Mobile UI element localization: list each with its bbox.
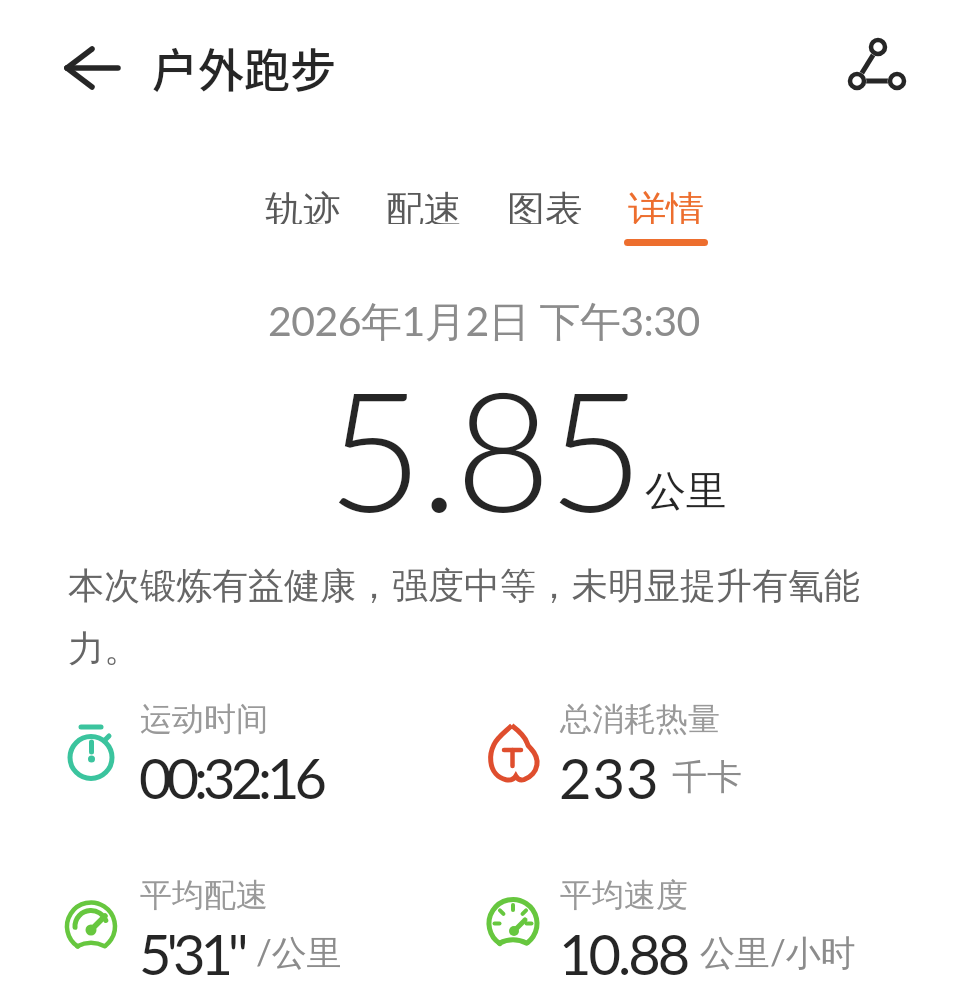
button[interactable]: 配速 (386, 186, 462, 224)
staticText: 2026年1月2日 下午3:30 (268, 296, 700, 342)
button[interactable]: 运动时间 (64, 699, 247, 775)
staticText: 配速 (386, 186, 462, 224)
staticText: 运动时间 (140, 699, 268, 731)
staticText: 图表 (507, 186, 583, 224)
staticText: 户外跑步 (152, 34, 336, 86)
staticText: /公里 (256, 930, 342, 975)
button[interactable] (845, 31, 911, 97)
staticText: 5'31" (139, 920, 244, 976)
staticText: 千卡 (672, 755, 742, 799)
button[interactable]: 轨迹 (265, 186, 341, 224)
button[interactable]: 图表 (507, 186, 583, 224)
staticText: 233 (559, 744, 660, 800)
button[interactable]: 详情 (628, 186, 704, 224)
staticText: 00:32:16 (139, 744, 322, 800)
staticText: 轨迹 (265, 186, 341, 224)
button[interactable] (60, 38, 124, 94)
button[interactable]: 平均速度 (484, 875, 781, 951)
button[interactable]: 总消耗热量 (484, 699, 667, 775)
staticText: 公里 (645, 466, 727, 512)
staticText: 5.85 (327, 348, 641, 547)
staticText: 详情 (628, 186, 704, 224)
staticText: 平均速度 (560, 875, 688, 907)
staticText: 公里/小时 (700, 930, 856, 975)
staticText: 10.88 (559, 920, 688, 976)
staticText: 平均配速 (140, 875, 268, 907)
staticText: 本次锻炼有益健康，强度中等，未明显提升有氧能力。 (68, 563, 880, 672)
button[interactable]: 平均配速 (64, 875, 267, 951)
staticText: 总消耗热量 (560, 699, 720, 731)
